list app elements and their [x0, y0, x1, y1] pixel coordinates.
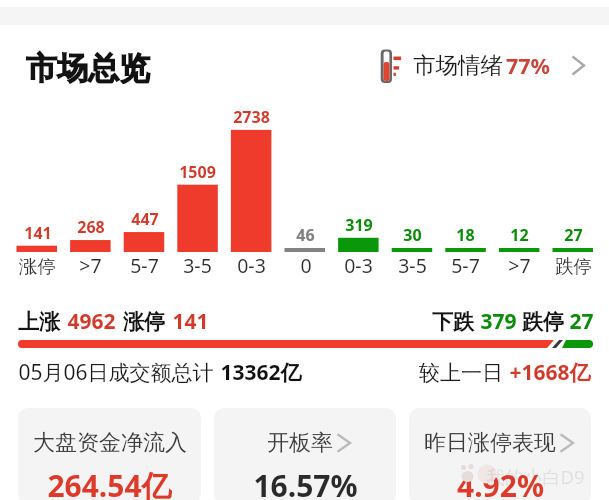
- staticText: 27: [564, 224, 583, 246]
- staticText: 18: [456, 224, 475, 246]
- staticText: 5-7: [130, 252, 159, 276]
- staticText: 昨日涨停表现: [424, 429, 556, 457]
- staticText: 447: [131, 208, 159, 230]
- staticText: 0: [300, 252, 312, 276]
- staticText: 30: [403, 224, 422, 246]
- staticText: 05月06日成交额总计: [18, 358, 214, 387]
- staticText: 开板率: [267, 429, 333, 457]
- staticText: 77%: [506, 51, 550, 80]
- staticText: +1668亿: [509, 358, 591, 387]
- staticText: 16.57%: [253, 465, 358, 500]
- staticText: 3-5: [183, 252, 212, 276]
- staticText: 3-5: [398, 252, 427, 276]
- staticText: 12: [510, 224, 529, 246]
- staticText: 379: [480, 307, 517, 336]
- staticText: 46: [296, 224, 315, 246]
- staticText: 0-3: [344, 252, 373, 276]
- staticText: 5-7: [451, 252, 480, 276]
- staticText: 涨停: [123, 309, 165, 335]
- staticText: 141: [24, 222, 52, 244]
- staticText: 141: [172, 307, 209, 336]
- staticText: 涨停: [19, 255, 56, 278]
- staticText: >7: [79, 252, 102, 276]
- staticText: 0-3: [237, 252, 266, 276]
- staticText: 大盘资金净流入: [33, 429, 187, 457]
- staticText: 跌停: [555, 255, 592, 278]
- staticText: 跌停: [522, 309, 564, 335]
- staticText: 1509: [179, 161, 216, 183]
- staticText: 我的小白D9: [486, 464, 585, 489]
- button[interactable]: 开板率: [214, 408, 396, 500]
- staticText: 319: [345, 214, 373, 236]
- staticText: 27: [569, 307, 594, 336]
- other: 市场情绪: [378, 48, 408, 82]
- staticText: 4962: [67, 307, 116, 336]
- staticText: >7: [508, 252, 531, 276]
- staticText: 4.92%: [457, 465, 544, 500]
- staticText: 上涨: [18, 309, 60, 335]
- button[interactable]: 大盘资金净流入: [18, 408, 201, 500]
- staticText: 13362亿: [220, 358, 302, 387]
- staticText: 264.54亿: [47, 465, 172, 500]
- staticText: 下跌: [432, 309, 474, 335]
- button[interactable]: 市场情绪: [372, 44, 593, 86]
- staticText: 市场总览: [26, 49, 150, 88]
- staticText: 268: [77, 216, 105, 238]
- staticText: 市场情绪: [413, 51, 503, 79]
- staticText: 2738: [233, 106, 270, 128]
- staticText: 较上一日: [419, 360, 503, 386]
- button[interactable]: 昨日涨停表现: [409, 408, 591, 500]
